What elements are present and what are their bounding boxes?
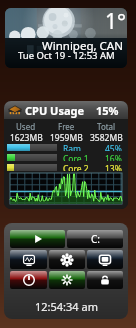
button[interactable]: Play — [10, 230, 65, 248]
button[interactable]: C: — [67, 230, 123, 248]
button[interactable]: Display — [87, 250, 123, 269]
staticText: 3582MB — [90, 132, 123, 144]
staticText: Total — [97, 121, 116, 132]
staticText: 1959MB — [50, 132, 83, 144]
staticText: Free — [58, 121, 75, 132]
staticText: 12:54:34 am — [35, 299, 98, 314]
staticText: 15% — [96, 103, 119, 118]
staticText: 13% — [105, 163, 122, 171]
staticText: C: — [91, 232, 100, 246]
staticText: CPU Usage — [25, 103, 85, 118]
button[interactable]: Settings — [49, 250, 85, 269]
button[interactable]: Refresh — [49, 271, 85, 289]
button[interactable]: Power — [10, 271, 47, 289]
staticText: Used — [16, 121, 36, 132]
button[interactable]: Lock — [87, 271, 123, 289]
staticText: 1623MB — [10, 132, 43, 144]
staticText: Core 1 — [63, 153, 89, 161]
staticText: 16% — [105, 153, 122, 161]
staticText: Winnipeg, CAN — [42, 38, 123, 54]
button[interactable]: 1° — [5, 8, 127, 68]
staticText: Tue Oct 19 - 12:53 AM — [18, 49, 115, 62]
staticText: 1° — [105, 8, 126, 36]
button[interactable]: CPU Usage — [4, 101, 128, 209]
staticText: Ram — [63, 143, 82, 151]
button[interactable]: Monitor — [10, 250, 47, 269]
staticText: Core 2 — [63, 163, 89, 171]
staticText: 45% — [105, 143, 122, 151]
